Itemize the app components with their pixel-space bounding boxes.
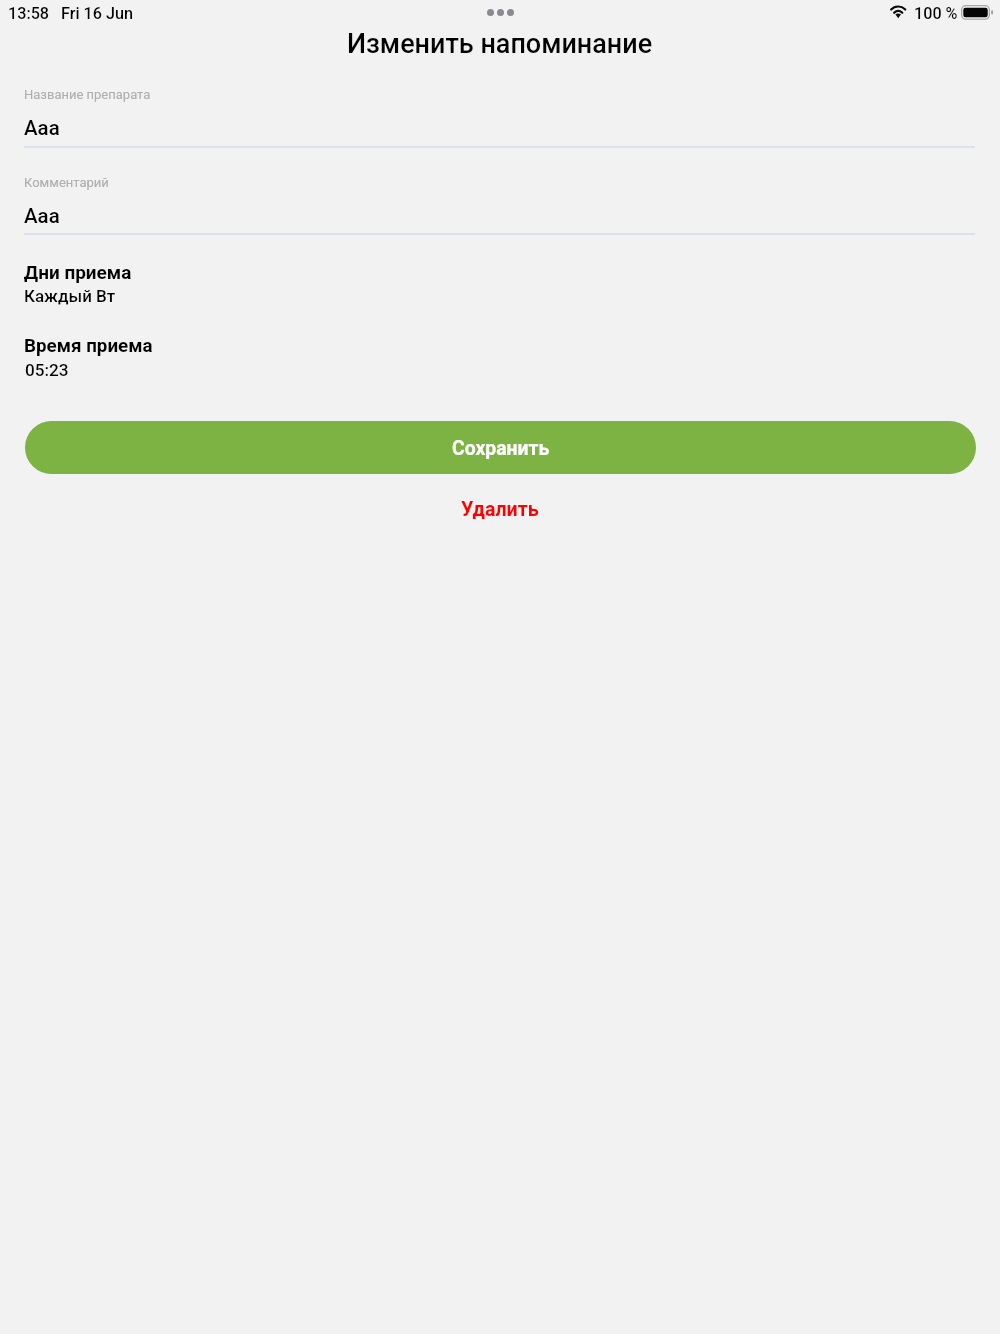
staticText: Aaa bbox=[24, 116, 60, 140]
staticText: Каждый Вт bbox=[24, 286, 116, 306]
staticText: Сохранить bbox=[452, 437, 550, 460]
staticText: Удалить bbox=[461, 498, 539, 521]
staticText: Время приема bbox=[24, 335, 153, 357]
staticText: 13:58 bbox=[8, 4, 50, 23]
button[interactable]: Удалить bbox=[350, 492, 650, 526]
staticText: Aaa bbox=[24, 204, 60, 228]
button[interactable]: Время приема bbox=[24, 334, 444, 382]
staticText: Изменить напоминание bbox=[347, 28, 653, 58]
button[interactable]: Комментарий bbox=[24, 172, 975, 236]
button[interactable]: Сохранить bbox=[25, 421, 976, 474]
staticText: Название препарата bbox=[24, 87, 151, 102]
staticText: Fri 16 Jun bbox=[61, 4, 134, 23]
staticText: Дни приема bbox=[24, 261, 132, 283]
button[interactable]: Название препарата bbox=[24, 84, 975, 148]
staticText: Комментарий bbox=[24, 175, 109, 190]
staticText: 100 % bbox=[914, 4, 958, 23]
other: Battery bbox=[961, 5, 994, 21]
button[interactable]: Дни приема bbox=[24, 260, 444, 308]
staticText: 05:23 bbox=[25, 360, 69, 380]
other: Wi-Fi bbox=[889, 3, 908, 17]
